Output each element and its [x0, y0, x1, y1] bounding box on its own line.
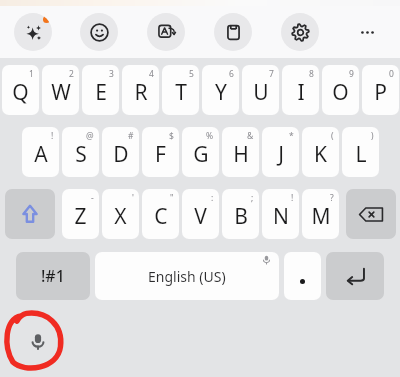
- staticText: D: [113, 140, 129, 169]
- staticText: 5: [189, 68, 194, 80]
- button[interactable]: J: [262, 127, 299, 177]
- staticText: W: [51, 78, 71, 107]
- button[interactable]: English (US): [95, 252, 279, 300]
- staticText: !: [291, 192, 294, 204]
- staticText: Q: [12, 78, 29, 107]
- button[interactable]: S: [62, 127, 99, 177]
- staticText: M: [311, 202, 331, 231]
- staticText: 2: [69, 68, 74, 80]
- staticText: #: [128, 130, 134, 142]
- staticText: ': [132, 192, 134, 204]
- staticText: 9: [349, 68, 354, 80]
- button[interactable]: T: [162, 65, 199, 115]
- staticText: !: [51, 130, 54, 142]
- button[interactable]: Backspace: [346, 189, 396, 239]
- staticText: :: [211, 192, 214, 204]
- staticText: Z: [74, 202, 87, 231]
- button[interactable]: W: [42, 65, 79, 115]
- staticText: P: [374, 78, 387, 107]
- button[interactable]: O: [322, 65, 359, 115]
- staticText: 0: [389, 68, 394, 80]
- button[interactable]: E: [82, 65, 119, 115]
- staticText: X: [114, 202, 127, 231]
- button[interactable]: D: [102, 127, 139, 177]
- staticText: ?: [330, 192, 334, 204]
- staticText: I: [297, 78, 305, 107]
- button[interactable]: U: [242, 65, 279, 115]
- staticText: @: [86, 130, 94, 142]
- button[interactable]: N: [262, 189, 299, 239]
- button[interactable]: M: [302, 189, 339, 239]
- staticText: E: [95, 78, 107, 107]
- staticText: ": [170, 192, 174, 204]
- button[interactable]: H: [222, 127, 259, 177]
- staticText: U: [253, 78, 269, 107]
- staticText: ;: [251, 192, 254, 204]
- staticText: 8: [309, 68, 314, 80]
- staticText: C: [154, 202, 168, 231]
- button[interactable]: AI writing tools: [14, 13, 52, 51]
- button[interactable]: Q: [2, 65, 39, 115]
- button[interactable]: G: [182, 127, 219, 177]
- button[interactable]: !#1: [16, 252, 90, 300]
- button[interactable]: Clipboard: [214, 13, 252, 51]
- staticText: 3: [109, 68, 114, 80]
- staticText: N: [273, 202, 289, 231]
- button[interactable]: V: [182, 189, 219, 239]
- button[interactable]: L: [342, 127, 379, 177]
- button[interactable]: [284, 252, 321, 300]
- button[interactable]: R: [122, 65, 159, 115]
- button[interactable]: I: [282, 65, 319, 115]
- button[interactable]: Emoji: [80, 13, 118, 51]
- button[interactable]: Y: [202, 65, 239, 115]
- staticText: R: [134, 78, 148, 107]
- staticText: L: [355, 140, 367, 169]
- staticText: J: [278, 140, 284, 169]
- button[interactable]: Translate: [147, 13, 185, 51]
- staticText: F: [155, 140, 166, 169]
- staticText: !#1: [41, 265, 65, 287]
- staticText: S: [75, 140, 87, 169]
- button[interactable]: P: [362, 65, 399, 115]
- staticText: V: [194, 202, 207, 231]
- staticText: %: [206, 130, 214, 142]
- staticText: T: [175, 78, 187, 107]
- button[interactable]: A: [22, 127, 59, 177]
- staticText: 6: [229, 68, 234, 80]
- staticText: 1: [29, 68, 34, 80]
- button[interactable]: C: [142, 189, 179, 239]
- staticText: Y: [215, 78, 227, 107]
- staticText: *: [289, 130, 294, 142]
- staticText: 4: [149, 68, 154, 80]
- staticText: English (US): [148, 267, 226, 286]
- staticText: -: [91, 192, 94, 204]
- staticText: 7: [269, 68, 274, 80]
- staticText: (: [331, 130, 334, 142]
- button[interactable]: K: [302, 127, 339, 177]
- staticText: O: [332, 78, 349, 107]
- button[interactable]: B: [222, 189, 259, 239]
- button[interactable]: Enter: [326, 252, 384, 300]
- staticText: K: [314, 140, 327, 169]
- button[interactable]: X: [102, 189, 139, 239]
- staticText: H: [233, 140, 249, 169]
- staticText: A: [34, 140, 48, 169]
- staticText: $: [169, 130, 174, 142]
- staticText: B: [234, 202, 248, 231]
- button[interactable]: More options: [348, 13, 386, 51]
- button[interactable]: Shift: [5, 189, 55, 239]
- button[interactable]: Voice input: [16, 319, 60, 363]
- staticText: &: [247, 130, 254, 142]
- button[interactable]: F: [142, 127, 179, 177]
- staticText: G: [193, 140, 209, 169]
- button[interactable]: Settings: [281, 13, 319, 51]
- button[interactable]: Z: [62, 189, 99, 239]
- staticText: ): [371, 130, 374, 142]
